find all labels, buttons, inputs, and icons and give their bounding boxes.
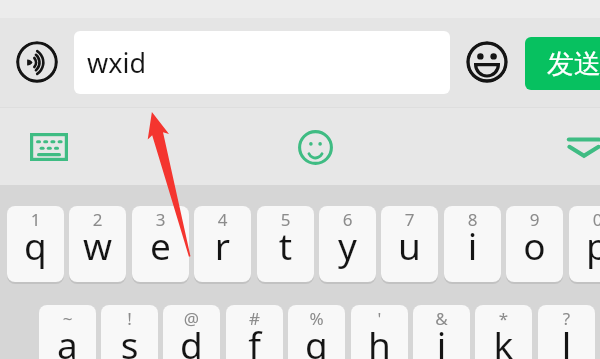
button[interactable]: Stickers — [293, 125, 337, 169]
staticText: h — [351, 319, 408, 359]
button[interactable]: 4 — [194, 206, 251, 282]
staticText: d — [163, 319, 220, 359]
staticText: r — [194, 220, 251, 270]
staticText: g — [288, 319, 345, 359]
staticText: u — [381, 220, 438, 270]
button[interactable]: @ — [163, 305, 220, 359]
staticText: a — [39, 319, 96, 359]
staticText: y — [319, 220, 376, 270]
staticText: 2 — [69, 208, 126, 231]
staticText: ! — [101, 307, 158, 330]
button[interactable]: 0 — [569, 206, 600, 282]
staticText: j — [413, 319, 470, 359]
button[interactable]: 1 — [7, 206, 64, 282]
staticText: 6 — [319, 208, 376, 231]
staticText: wxid — [87, 44, 147, 81]
button[interactable]: * — [475, 305, 532, 359]
staticText: @ — [163, 307, 220, 330]
button[interactable]: Voice input — [16, 41, 58, 83]
button[interactable]: % — [288, 305, 345, 359]
staticText: q — [7, 220, 64, 270]
button[interactable]: 8 — [444, 206, 501, 282]
staticText: ? — [538, 307, 595, 330]
button[interactable]: 9 — [506, 206, 563, 282]
button[interactable]: 2 — [69, 206, 126, 282]
button[interactable]: # — [226, 305, 283, 359]
button[interactable]: Keyboard — [21, 123, 77, 171]
staticText: 9 — [506, 208, 563, 231]
staticText: 4 — [194, 208, 251, 231]
staticText: & — [413, 307, 470, 330]
button[interactable]: 发送 — [525, 37, 600, 90]
staticText: 3 — [132, 208, 189, 231]
button[interactable]: Emoji — [466, 41, 508, 83]
button[interactable]: 5 — [257, 206, 314, 282]
staticText: o — [506, 220, 563, 270]
staticText: s — [101, 319, 158, 359]
staticText: f — [226, 319, 283, 359]
staticText: 7 — [381, 208, 438, 231]
staticText: p — [569, 220, 600, 270]
button[interactable]: ? — [538, 305, 595, 359]
staticText: e — [132, 220, 189, 270]
staticText: 0 — [569, 208, 600, 231]
button[interactable]: ' — [351, 305, 408, 359]
staticText: ' — [351, 307, 408, 330]
button[interactable]: 6 — [319, 206, 376, 282]
staticText: t — [257, 220, 314, 270]
staticText: i — [444, 220, 501, 270]
staticText: 8 — [444, 208, 501, 231]
staticText: 1 — [7, 208, 64, 231]
button[interactable]: ~ — [39, 305, 96, 359]
button[interactable]: Hide keyboard — [562, 126, 600, 170]
button[interactable]: 7 — [381, 206, 438, 282]
staticText: % — [288, 307, 345, 330]
staticText: 发送 — [547, 47, 600, 81]
staticText: w — [69, 220, 126, 270]
button[interactable]: wxid — [74, 31, 450, 94]
button[interactable]: 3 — [132, 206, 189, 282]
staticText: * — [475, 307, 532, 330]
staticText: ~ — [39, 307, 96, 330]
staticText: k — [475, 319, 532, 359]
button[interactable]: ! — [101, 305, 158, 359]
staticText: l — [538, 319, 595, 359]
button[interactable]: & — [413, 305, 470, 359]
staticText: 5 — [257, 208, 314, 231]
staticText: # — [226, 307, 283, 330]
